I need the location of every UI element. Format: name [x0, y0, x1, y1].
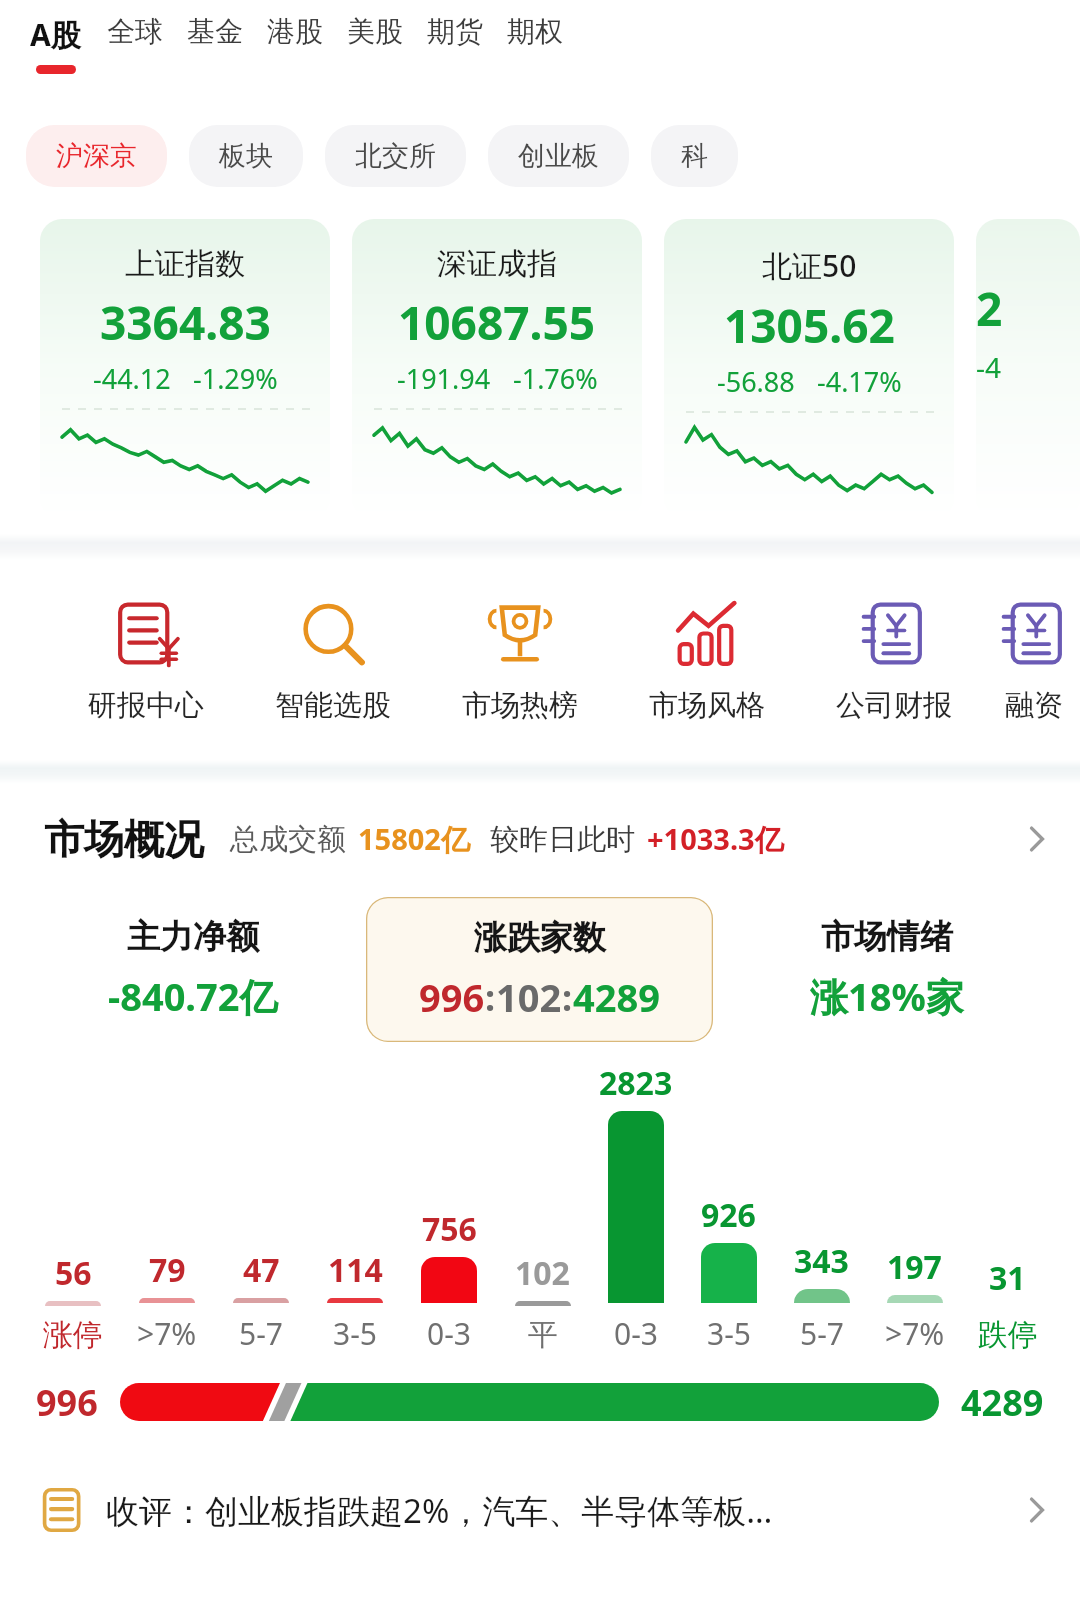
staticText: 港股	[267, 14, 323, 49]
staticText: 0-3	[614, 1313, 658, 1354]
staticText: 研报中心	[88, 687, 204, 724]
button[interactable]: 智能选股	[239, 597, 426, 724]
staticText: -1.29%	[193, 360, 278, 397]
staticText: 2	[976, 277, 1003, 340]
button[interactable]: 科	[651, 125, 738, 187]
staticText: 上证指数	[125, 245, 245, 283]
button[interactable]: 深证成指	[352, 219, 642, 519]
staticText: 板块	[219, 139, 273, 173]
staticText: +1033.3亿	[647, 819, 784, 859]
staticText: 15802亿	[358, 819, 470, 859]
staticText: 美股	[347, 14, 403, 49]
staticText: 较昨日此时	[490, 821, 635, 858]
staticText: 全球	[107, 14, 163, 49]
button[interactable]: 197	[868, 1245, 961, 1354]
other: 查看市场概况	[1020, 822, 1054, 856]
button[interactable]: 期权	[507, 14, 587, 59]
staticText: 10687.55	[398, 291, 596, 354]
staticText: A股	[30, 14, 81, 55]
staticText: 3364.83	[100, 291, 271, 354]
staticText: 756	[422, 1207, 477, 1251]
staticText: 197	[887, 1245, 942, 1289]
staticText: 市场风格	[649, 687, 765, 724]
button[interactable]: 56	[26, 1251, 120, 1354]
button[interactable]: 2	[976, 219, 1080, 519]
staticText: 深证成指	[437, 245, 557, 283]
staticText: 996	[419, 971, 485, 1023]
staticText: -4.17%	[817, 363, 902, 400]
button[interactable]: 收评：创业板指跌超2%，汽车、半导体等板…	[0, 1450, 1080, 1570]
staticText: 2823	[599, 1061, 673, 1105]
button[interactable]: 港股	[267, 14, 347, 59]
staticText: 4289	[573, 971, 660, 1023]
staticText: 北交所	[355, 139, 436, 173]
staticText: :	[562, 973, 573, 1022]
staticText: 沪深京	[56, 139, 137, 173]
staticText: :	[485, 973, 496, 1022]
staticText: 0-3	[427, 1313, 471, 1354]
staticText: 102	[496, 971, 562, 1023]
staticText: 114	[328, 1248, 383, 1292]
button[interactable]: 北交所	[325, 125, 466, 187]
staticText: 智能选股	[275, 687, 391, 724]
button[interactable]: 31	[961, 1256, 1054, 1354]
button[interactable]: 343	[775, 1239, 868, 1354]
button[interactable]: 市场热榜	[426, 597, 613, 724]
staticText: 融资	[1005, 687, 1063, 724]
staticText: -4	[976, 348, 1002, 386]
staticText: 79	[149, 1248, 186, 1292]
button[interactable]: 102	[496, 1251, 589, 1354]
staticText: 1305.62	[724, 294, 895, 357]
staticText: 基金	[187, 14, 243, 49]
staticText: 北证50	[762, 245, 857, 286]
staticText: -1.76%	[513, 360, 598, 397]
staticText: 涨停	[43, 1316, 103, 1354]
button[interactable]: 市场风格	[613, 597, 800, 724]
staticText: 总成交额	[230, 821, 346, 858]
button[interactable]: 美股	[347, 14, 427, 59]
button[interactable]: 市场概况	[0, 784, 1080, 894]
button[interactable]: 114	[308, 1248, 402, 1354]
staticText: -191.94	[397, 360, 491, 397]
staticText: 市场热榜	[462, 687, 578, 724]
staticText: 市场概况	[44, 814, 204, 864]
staticText: 102	[515, 1251, 570, 1295]
staticText: 涨跌家数	[474, 917, 606, 959]
staticText: 期货	[427, 14, 483, 49]
button[interactable]: 926	[682, 1193, 775, 1354]
button[interactable]: 北证50	[664, 219, 954, 519]
staticText: 市场情绪	[821, 916, 953, 958]
button[interactable]: 上证指数	[40, 219, 330, 519]
button[interactable]: A股	[30, 14, 107, 74]
staticText: >7%	[885, 1313, 945, 1354]
button[interactable]: 研报中心	[52, 597, 239, 724]
staticText: -840.72亿	[108, 970, 278, 1022]
staticText: 926	[701, 1193, 756, 1237]
button[interactable]: 基金	[187, 14, 267, 59]
staticText: 31	[989, 1256, 1026, 1300]
staticText: >7%	[137, 1313, 197, 1354]
button[interactable]: 主力净额	[20, 916, 366, 1022]
staticText: 收评：创业板指跌超2%，汽车、半导体等板…	[106, 1488, 773, 1533]
button[interactable]: 板块	[189, 125, 303, 187]
staticText: -56.88	[717, 363, 795, 400]
button[interactable]: 47	[214, 1248, 308, 1354]
button[interactable]: 创业板	[488, 125, 629, 187]
button[interactable]: 公司财报	[800, 597, 987, 724]
staticText: 主力净额	[127, 916, 259, 958]
button[interactable]: 市场情绪	[713, 916, 1060, 1022]
staticText: 996	[36, 1378, 98, 1427]
button[interactable]: 融资	[987, 597, 1080, 724]
staticText: -44.12	[93, 360, 171, 397]
button[interactable]: 2823	[589, 1061, 682, 1354]
staticText: 创业板	[518, 139, 599, 173]
staticText: 5-7	[800, 1313, 844, 1354]
button[interactable]: 全球	[107, 14, 187, 59]
button[interactable]: 79	[120, 1248, 214, 1354]
button[interactable]: 756	[402, 1207, 496, 1354]
staticText: 56	[55, 1251, 92, 1295]
button[interactable]: 期货	[427, 14, 507, 59]
button[interactable]: 沪深京	[26, 125, 167, 187]
staticText: 343	[794, 1239, 849, 1283]
button[interactable]: 涨跌家数	[366, 897, 713, 1042]
